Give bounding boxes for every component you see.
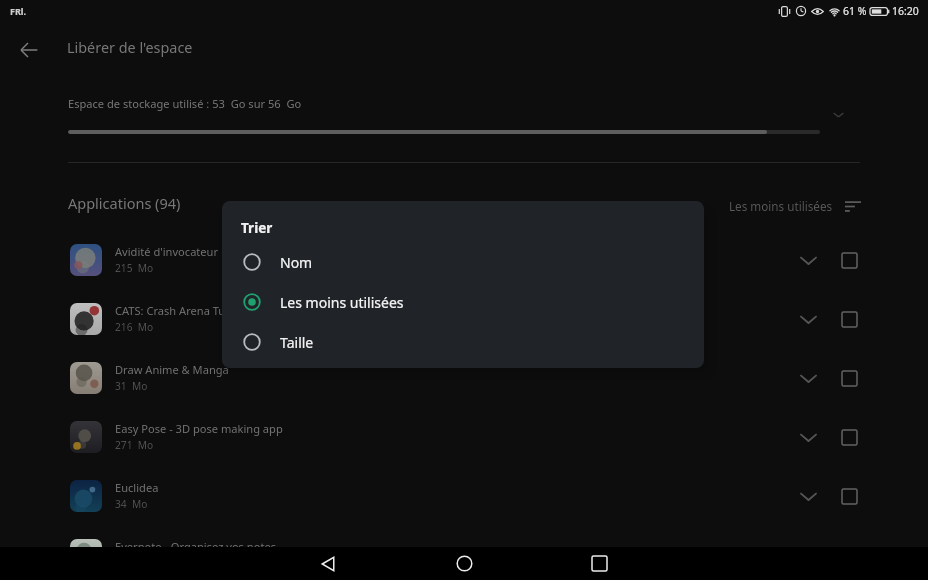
button[interactable]: Easy Pose - 3D pose making app — [0, 407, 928, 466]
staticText: CATS: Crash Arena Turbo Stars — [115, 303, 273, 318]
staticText: 215 Mo — [115, 261, 154, 275]
staticText: 31 Mo — [115, 379, 148, 393]
button[interactable]: Back — [311, 547, 345, 580]
staticText: Nom — [280, 253, 313, 272]
button[interactable]: Les moins utilisées — [222, 282, 704, 322]
button[interactable]: Expand — [791, 479, 825, 513]
staticText: Draw Anime & Manga — [115, 362, 229, 377]
button[interactable]: CATS: Crash Arena Turbo Stars — [0, 289, 928, 348]
staticText: Taille — [280, 333, 314, 352]
button[interactable]: Select app — [835, 246, 863, 274]
staticText: Les moins utilisées — [729, 198, 833, 214]
staticText: 61 % — [843, 4, 867, 18]
button[interactable]: Les moins utilisées — [729, 194, 861, 218]
staticText: 216 Mo — [115, 320, 154, 334]
button[interactable]: Select app — [835, 482, 863, 510]
button[interactable]: Expand — [791, 538, 825, 572]
button[interactable]: Home — [447, 547, 481, 580]
staticText: Trier — [241, 219, 273, 237]
button[interactable]: Expand — [791, 361, 825, 395]
staticText: 16:20 — [892, 4, 919, 18]
button[interactable]: Expand — [791, 243, 825, 277]
staticText: Evernote - Organisez vos notes — [115, 539, 276, 554]
button[interactable]: Euclidea — [0, 466, 928, 525]
staticText: Espace de stockage utilisé : 53 Go sur 5… — [68, 96, 302, 111]
staticText: Applications (94) — [68, 193, 181, 213]
staticText: Euclidea — [115, 480, 159, 495]
button[interactable]: Select app — [835, 305, 863, 333]
button[interactable]: Draw Anime & Manga — [0, 348, 928, 407]
button[interactable]: Taille — [222, 322, 704, 362]
staticText: Les moins utilisées — [280, 293, 404, 312]
button[interactable]: Evernote - Organisez vos notes — [0, 525, 928, 580]
staticText: FRl. — [10, 5, 27, 17]
button[interactable]: Back — [9, 30, 49, 70]
button[interactable]: Recent apps — [582, 547, 616, 580]
staticText: Libérer de l'espace — [67, 38, 193, 58]
staticText: Easy Pose - 3D pose making app — [115, 421, 283, 436]
button[interactable]: Select app — [835, 364, 863, 392]
button[interactable]: Avidité d'invocateur — [0, 230, 928, 289]
button[interactable]: Nom — [222, 242, 704, 282]
button[interactable]: Expand — [791, 420, 825, 454]
button[interactable]: Select app — [835, 423, 863, 451]
button[interactable]: Select app — [835, 541, 863, 569]
button[interactable]: Expand — [791, 302, 825, 336]
staticText: 271 Mo — [115, 438, 154, 452]
staticText: 34 Mo — [115, 497, 148, 511]
staticText: Avidité d'invocateur — [115, 244, 219, 259]
button[interactable]: Expand storage details — [822, 98, 854, 130]
